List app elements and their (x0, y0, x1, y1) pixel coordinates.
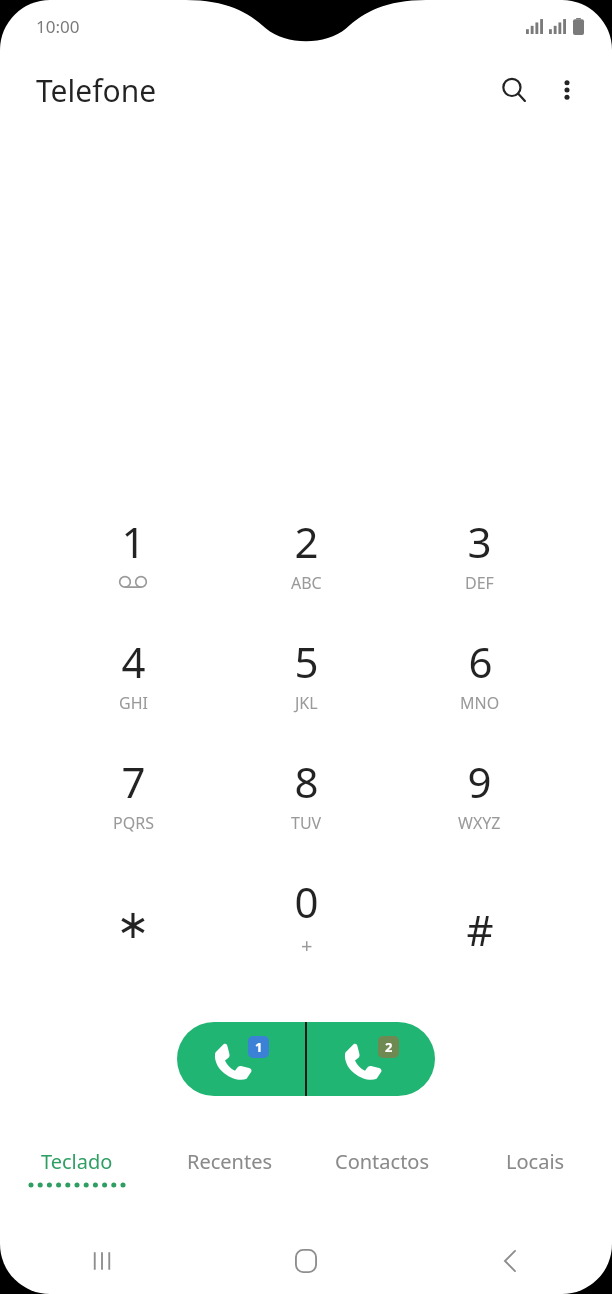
button[interactable]: 8 (220, 745, 393, 865)
button[interactable]: Chamar com SIM 1 (177, 1022, 305, 1096)
button[interactable]: 1 (46, 505, 220, 625)
staticText: MNO (460, 692, 500, 714)
staticText: GHI (119, 692, 148, 714)
staticText: 3 (467, 513, 492, 570)
staticText: 5 (294, 633, 319, 690)
button[interactable]: Chamar com SIM 2 (307, 1022, 435, 1096)
staticText: TUV (291, 812, 322, 834)
staticText: ∗ (116, 901, 150, 948)
button[interactable]: # (393, 865, 566, 985)
staticText: 2 (385, 1038, 393, 1056)
button[interactable]: Teclado (0, 1148, 153, 1210)
staticText: 9 (467, 753, 492, 810)
staticText: 10:00 (36, 15, 80, 38)
staticText: ABC (291, 572, 322, 594)
button[interactable]: Mais opções (542, 65, 592, 115)
button[interactable]: ∗ (46, 865, 220, 985)
staticText: 8 (294, 753, 319, 810)
button[interactable]: 7 (46, 745, 220, 865)
staticText: DEF (465, 572, 494, 594)
staticText: PQRS (113, 812, 154, 834)
staticText: Contactos (335, 1148, 430, 1175)
button[interactable]: Recentes (0, 1228, 204, 1294)
staticText: 4 (121, 633, 146, 690)
staticText: 7 (121, 753, 146, 810)
staticText: Teclado (41, 1148, 113, 1175)
staticText: Telefone (36, 70, 157, 111)
staticText: 2 (294, 513, 319, 570)
button[interactable]: 4 (46, 625, 220, 745)
staticText: Recentes (187, 1148, 273, 1175)
button[interactable]: 6 (393, 625, 566, 745)
button[interactable]: 5 (220, 625, 393, 745)
button[interactable]: Voltar (408, 1228, 612, 1294)
button[interactable]: Locais (459, 1148, 612, 1210)
button[interactable]: 3 (393, 505, 566, 625)
staticText: 1 (255, 1038, 263, 1056)
staticText: 1 (121, 513, 146, 570)
button[interactable]: 2 (220, 505, 393, 625)
staticText: 6 (468, 633, 493, 690)
button[interactable]: Início (204, 1228, 408, 1294)
button[interactable]: 9 (393, 745, 566, 865)
button[interactable]: Pesquisar (486, 62, 542, 118)
button[interactable]: Recentes (153, 1148, 306, 1210)
staticText: # (466, 901, 494, 958)
staticText: JKL (295, 692, 318, 714)
staticText: + (301, 932, 313, 959)
staticText: WXYZ (458, 812, 501, 834)
button[interactable]: Contactos (306, 1148, 459, 1210)
button[interactable]: 0 (220, 865, 393, 985)
staticText: Locais (506, 1148, 565, 1175)
staticText: 0 (294, 873, 319, 930)
